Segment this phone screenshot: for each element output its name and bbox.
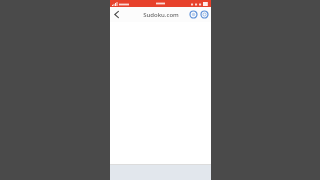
button[interactable]: Refresh	[188, 7, 199, 22]
button[interactable]: Back	[110, 7, 123, 22]
staticText: Sudoku.com	[143, 11, 179, 19]
button[interactable]: Settings	[199, 7, 210, 22]
